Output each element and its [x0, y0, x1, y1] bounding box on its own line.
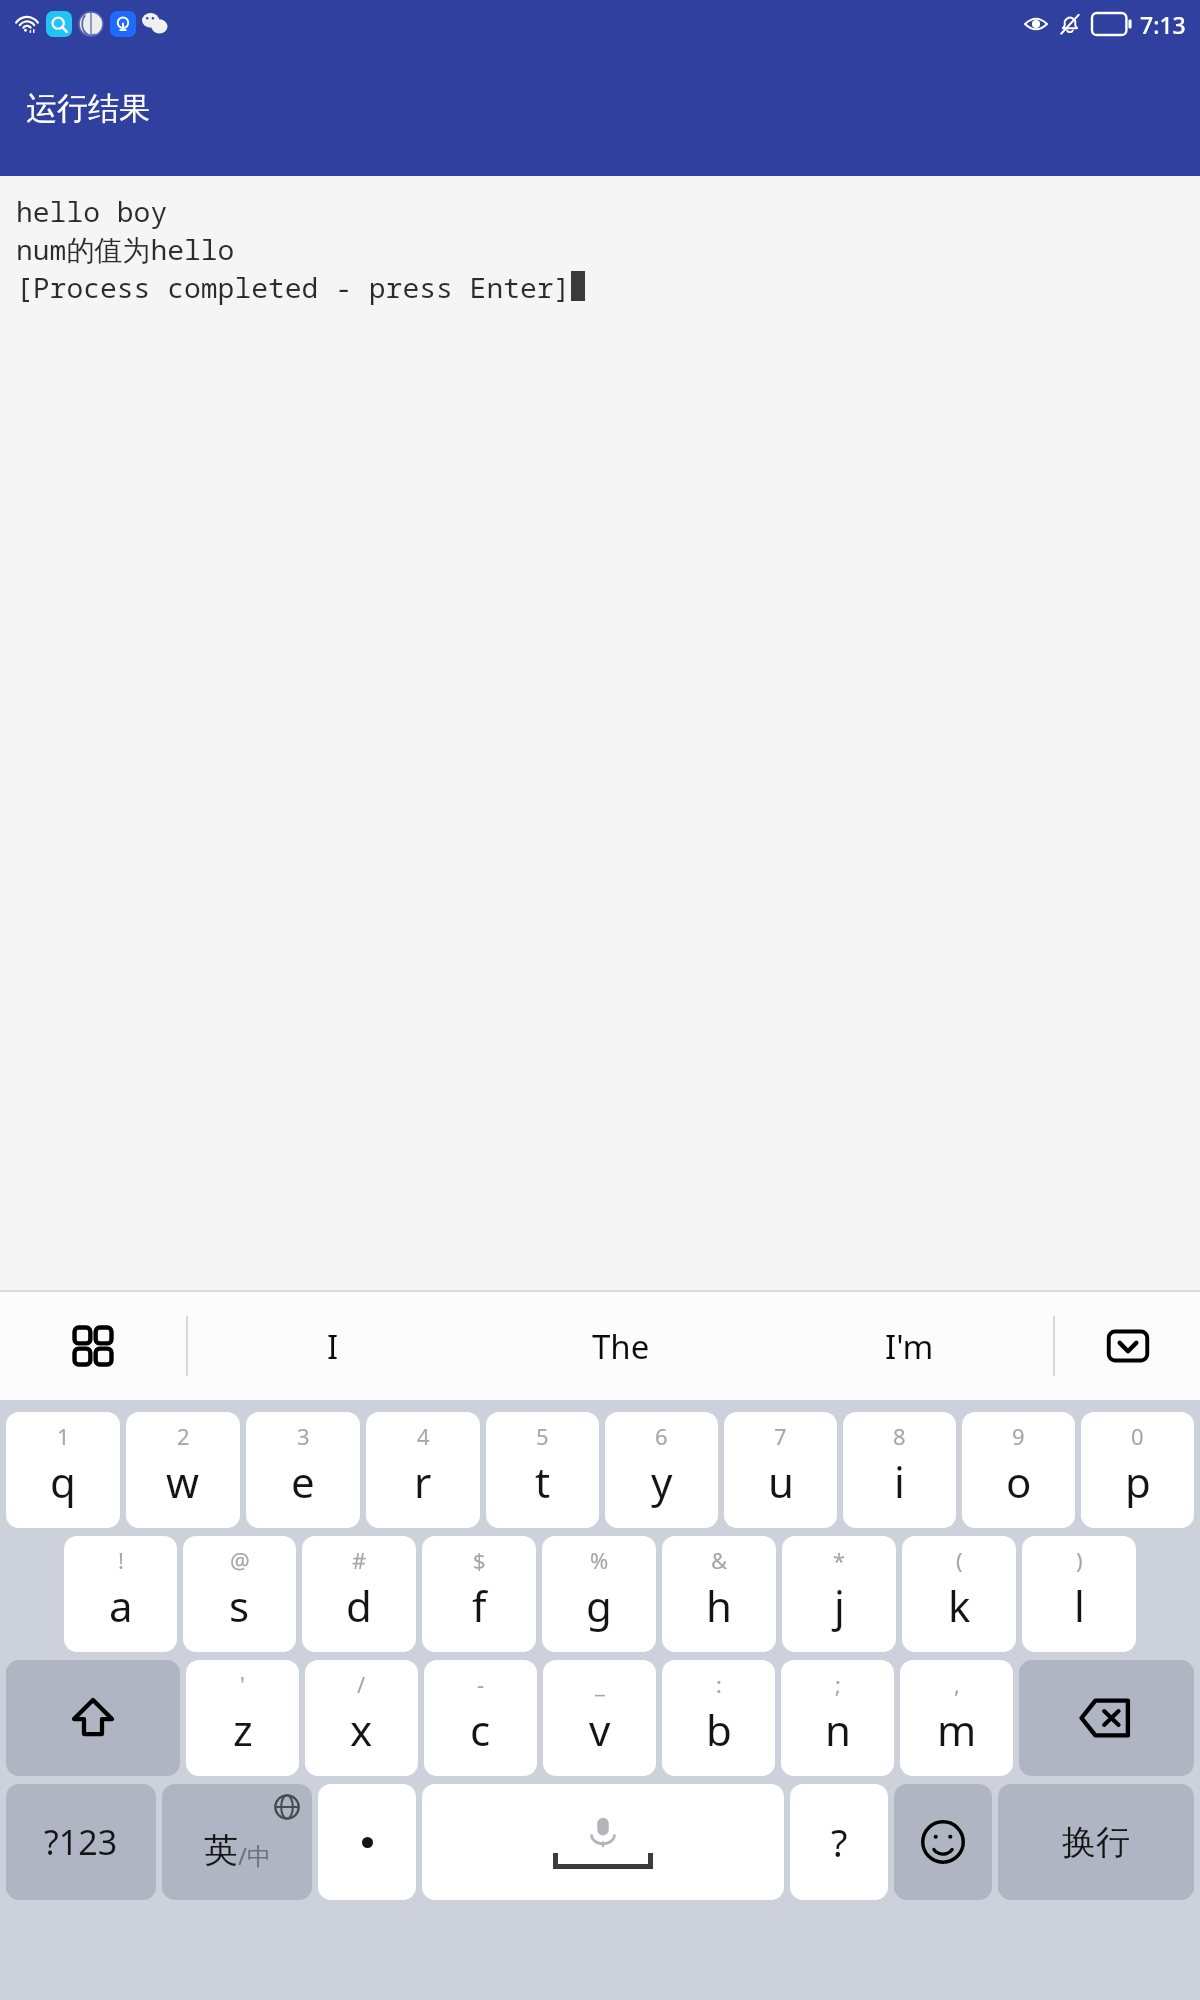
- staticText: 5: [536, 1421, 549, 1451]
- staticText: %: [590, 1545, 609, 1575]
- staticText: @: [230, 1545, 250, 1575]
- staticText: h: [706, 1577, 732, 1634]
- staticText: q: [50, 1453, 76, 1510]
- staticText: ': [240, 1669, 245, 1699]
- button[interactable]: [318, 1784, 416, 1900]
- staticText: 换行: [1062, 1821, 1130, 1864]
- staticText: x: [350, 1701, 373, 1758]
- button[interactable]: $: [422, 1536, 536, 1652]
- staticText: m: [937, 1701, 977, 1758]
- staticText: g: [586, 1577, 612, 1634]
- button[interactable]: Emoji: [894, 1784, 992, 1900]
- staticText: 运行结果: [26, 89, 150, 128]
- staticText: w: [166, 1453, 200, 1510]
- button[interactable]: 0: [1081, 1412, 1194, 1528]
- staticText: o: [1006, 1453, 1032, 1510]
- staticText: v: [589, 1701, 611, 1758]
- button[interactable]: 4: [366, 1412, 480, 1528]
- button[interactable]: Space: [422, 1784, 784, 1900]
- staticText: 9: [1012, 1421, 1025, 1451]
- button[interactable]: 5: [486, 1412, 599, 1528]
- button[interactable]: %: [542, 1536, 656, 1652]
- staticText: s: [229, 1577, 250, 1634]
- staticText: #: [352, 1545, 367, 1575]
- staticText: d: [346, 1577, 372, 1634]
- staticText: 英: [204, 1829, 238, 1872]
- button[interactable]: &: [662, 1536, 776, 1652]
- staticText: I'm: [885, 1324, 934, 1369]
- staticText: j: [834, 1577, 845, 1634]
- button[interactable]: (: [902, 1536, 1016, 1652]
- button[interactable]: !: [64, 1536, 177, 1652]
- staticText: I: [327, 1324, 339, 1369]
- staticText: l: [1074, 1577, 1085, 1634]
- button[interactable]: 3: [246, 1412, 360, 1528]
- staticText: r: [414, 1453, 432, 1510]
- button[interactable]: #: [302, 1536, 416, 1652]
- staticText: $: [473, 1545, 486, 1575]
- button[interactable]: 换行: [998, 1784, 1194, 1900]
- button[interactable]: ): [1022, 1536, 1136, 1652]
- staticText: ;: [835, 1669, 841, 1699]
- button[interactable]: 2: [126, 1412, 240, 1528]
- staticText: hello boy: [16, 192, 168, 230]
- staticText: 6: [655, 1421, 668, 1451]
- staticText: n: [825, 1701, 851, 1758]
- button[interactable]: @: [183, 1536, 296, 1652]
- button[interactable]: Keyboard menu: [0, 1292, 186, 1400]
- staticText: 2: [177, 1421, 190, 1451]
- staticText: ?: [831, 1816, 848, 1868]
- staticText: 8: [893, 1421, 906, 1451]
- button[interactable]: 7: [724, 1412, 837, 1528]
- button[interactable]: 8: [843, 1412, 956, 1528]
- staticText: num的值为hello: [16, 230, 235, 268]
- staticText: ,: [954, 1669, 960, 1699]
- button[interactable]: _: [543, 1660, 656, 1776]
- button[interactable]: 1: [6, 1412, 120, 1528]
- button[interactable]: ?: [790, 1784, 888, 1900]
- staticText: t: [535, 1453, 551, 1510]
- button[interactable]: -: [424, 1660, 537, 1776]
- staticText: a: [109, 1577, 133, 1634]
- staticText: 7:13: [1140, 9, 1186, 40]
- button[interactable]: *: [782, 1536, 896, 1652]
- button[interactable]: ?123: [6, 1784, 156, 1900]
- staticText: [Process completed - press Enter]: [16, 268, 571, 306]
- staticText: 3: [297, 1421, 310, 1451]
- staticText: The: [592, 1324, 650, 1369]
- staticText: z: [233, 1701, 253, 1758]
- button[interactable]: ,: [900, 1660, 1013, 1776]
- staticText: *: [833, 1545, 846, 1575]
- button[interactable]: :: [662, 1660, 775, 1776]
- staticText: y: [651, 1453, 673, 1510]
- staticText: !: [118, 1545, 124, 1575]
- button[interactable]: ;: [781, 1660, 894, 1776]
- staticText: 1: [57, 1421, 70, 1451]
- staticText: :: [716, 1669, 722, 1699]
- button[interactable]: ': [186, 1660, 299, 1776]
- staticText: 7: [774, 1421, 787, 1451]
- button[interactable]: 9: [962, 1412, 1075, 1528]
- staticText: b: [706, 1701, 732, 1758]
- staticText: 4: [417, 1421, 430, 1451]
- staticText: _: [595, 1669, 605, 1699]
- staticText: p: [1125, 1453, 1151, 1510]
- staticText: k: [948, 1577, 971, 1634]
- button[interactable]: 英: [162, 1784, 312, 1900]
- staticText: u: [768, 1453, 794, 1510]
- button[interactable]: Shift: [6, 1660, 180, 1776]
- staticText: ): [1076, 1545, 1083, 1575]
- button[interactable]: 6: [605, 1412, 718, 1528]
- staticText: e: [291, 1453, 315, 1510]
- button[interactable]: I'm: [765, 1292, 1053, 1400]
- staticText: (: [956, 1545, 963, 1575]
- button[interactable]: The: [477, 1292, 765, 1400]
- button[interactable]: /: [305, 1660, 418, 1776]
- button[interactable]: Backspace: [1019, 1660, 1194, 1776]
- staticText: &: [711, 1545, 728, 1575]
- staticText: -: [477, 1669, 485, 1699]
- button[interactable]: Hide keyboard: [1055, 1292, 1200, 1400]
- staticText: /: [357, 1669, 366, 1699]
- staticText: c: [470, 1701, 491, 1758]
- button[interactable]: I: [188, 1292, 477, 1400]
